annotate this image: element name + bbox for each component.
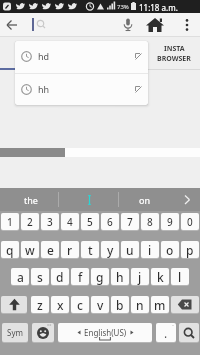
staticText: j [138, 269, 142, 285]
staticText: the [24, 194, 38, 206]
button[interactable]: h [111, 268, 129, 286]
button[interactable]: 5 [81, 213, 99, 231]
staticText: INSTA [164, 44, 185, 54]
staticText: n [136, 297, 144, 313]
staticText: Sym [7, 327, 23, 338]
button[interactable]: 7 [121, 213, 139, 231]
button[interactable] [121, 17, 135, 33]
staticText: on [139, 194, 151, 206]
button[interactable]: 8 [141, 213, 159, 231]
staticText: . [164, 325, 168, 341]
staticText: w [25, 242, 35, 258]
button[interactable]: 0 [181, 213, 199, 231]
staticText: 9 [167, 215, 173, 229]
staticText: 3 [47, 215, 53, 229]
button[interactable]: f [71, 268, 89, 286]
button[interactable]: w [21, 241, 39, 259]
button[interactable]: i [141, 241, 159, 259]
staticText: k [157, 269, 164, 285]
button[interactable]: m [151, 296, 169, 314]
button[interactable]: g [91, 268, 109, 286]
button[interactable]: the [14, 188, 48, 211]
staticText: d [56, 269, 64, 285]
button[interactable]: k [151, 268, 169, 286]
button[interactable]: q [1, 241, 19, 259]
staticText: r [67, 242, 73, 258]
staticText: p [186, 242, 194, 258]
staticText: f [78, 269, 83, 285]
staticText: 0 [187, 215, 193, 229]
button[interactable] [145, 17, 165, 33]
button[interactable]: b [111, 296, 129, 314]
staticText: 1 [7, 215, 13, 229]
button[interactable]: English(US) [58, 323, 152, 343]
button[interactable]: 6 [101, 213, 119, 231]
button[interactable]: d [51, 268, 69, 286]
staticText: 11:18 a.m. [139, 2, 178, 13]
staticText: t [88, 242, 93, 258]
button[interactable]: 1 [1, 213, 19, 231]
staticText: z [37, 297, 43, 313]
staticText: a [17, 269, 24, 285]
button[interactable]: c [71, 296, 89, 314]
staticText: 2 [27, 215, 33, 229]
staticText: c [77, 297, 83, 313]
staticText: s [37, 269, 43, 285]
button[interactable]: hh [15, 74, 148, 105]
button[interactable] [5, 18, 19, 32]
staticText: o [166, 242, 174, 258]
button[interactable]: INSTA [148, 44, 200, 68]
button[interactable]: p [181, 241, 199, 259]
staticText: ˙˙ [172, 324, 174, 331]
staticText: b [116, 297, 124, 313]
staticText: x [57, 297, 64, 313]
staticText: 73% [117, 3, 129, 11]
button[interactable]: v [91, 296, 109, 314]
staticText: English(US) [84, 327, 127, 338]
staticText: h [116, 269, 124, 285]
button[interactable]: x [51, 296, 69, 314]
button[interactable]: y [101, 241, 119, 259]
staticText: g [96, 269, 104, 285]
staticText: i [148, 242, 152, 258]
button[interactable] [181, 17, 193, 33]
button[interactable]: on [128, 188, 162, 211]
button[interactable]: u [121, 241, 139, 259]
button[interactable]: l [171, 268, 189, 286]
staticText: l [178, 269, 182, 285]
button[interactable] [1, 296, 27, 314]
button[interactable]: a [11, 268, 29, 286]
button[interactable]: s [31, 268, 49, 286]
staticText: u [126, 242, 134, 258]
button[interactable]: 4 [61, 213, 79, 231]
staticText: 5 [87, 215, 93, 229]
staticText: hd [38, 50, 50, 62]
button[interactable]: hd [15, 41, 148, 72]
button[interactable]: . [156, 323, 176, 343]
staticText: BROWSER [157, 54, 191, 64]
staticText: m [154, 297, 166, 313]
staticText: 8 [147, 215, 153, 229]
button[interactable]: j [131, 268, 149, 286]
staticText: 6 [107, 215, 113, 229]
staticText: y [107, 242, 114, 258]
button[interactable] [26, 16, 118, 34]
button[interactable]: z [31, 296, 49, 314]
button[interactable] [72, 188, 106, 211]
button[interactable]: Sym [2, 323, 28, 343]
button[interactable]: 3 [41, 213, 59, 231]
staticText: hh [38, 83, 50, 95]
button[interactable]: e [41, 241, 59, 259]
button[interactable]: r [61, 241, 79, 259]
button[interactable] [171, 296, 199, 314]
staticText: 7 [127, 215, 133, 229]
button[interactable]: 2 [21, 213, 39, 231]
button[interactable]: t [81, 241, 99, 259]
staticText: e [47, 242, 54, 258]
button[interactable]: 9 [161, 213, 179, 231]
button[interactable]: o [161, 241, 179, 259]
button[interactable] [179, 323, 199, 343]
button[interactable]: n [131, 296, 149, 314]
button[interactable]: °° [32, 323, 54, 343]
staticText: 4 [67, 215, 73, 229]
